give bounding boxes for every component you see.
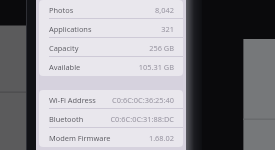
staticText: 321 [161, 24, 174, 34]
staticText: 8,042 [155, 5, 174, 15]
staticText: 256 GB [149, 43, 174, 53]
button[interactable]: Modem Firmware [39, 128, 183, 147]
staticText: C0:6C:0C:31:88:DC [110, 114, 174, 124]
button[interactable]: Wi-Fi Address [39, 90, 183, 109]
staticText: Bluetooth [49, 114, 84, 124]
staticText: Applications [49, 24, 92, 34]
staticText: Photos [49, 5, 74, 15]
button[interactable]: Capacity [39, 38, 183, 57]
button[interactable]: Applications [39, 19, 183, 38]
button[interactable]: Bluetooth [39, 109, 183, 128]
staticText: Wi-Fi Address [49, 95, 96, 105]
button[interactable]: Available [39, 57, 183, 76]
staticText: Capacity [49, 43, 79, 53]
button[interactable]: Photos [39, 0, 183, 19]
staticText: C0:6C:0C:36:25:40 [112, 95, 174, 105]
staticText: Modem Firmware [49, 133, 111, 143]
staticText: 105.31 GB [138, 62, 174, 72]
staticText: 1.68.02 [148, 133, 174, 143]
staticText: Available [49, 62, 81, 72]
